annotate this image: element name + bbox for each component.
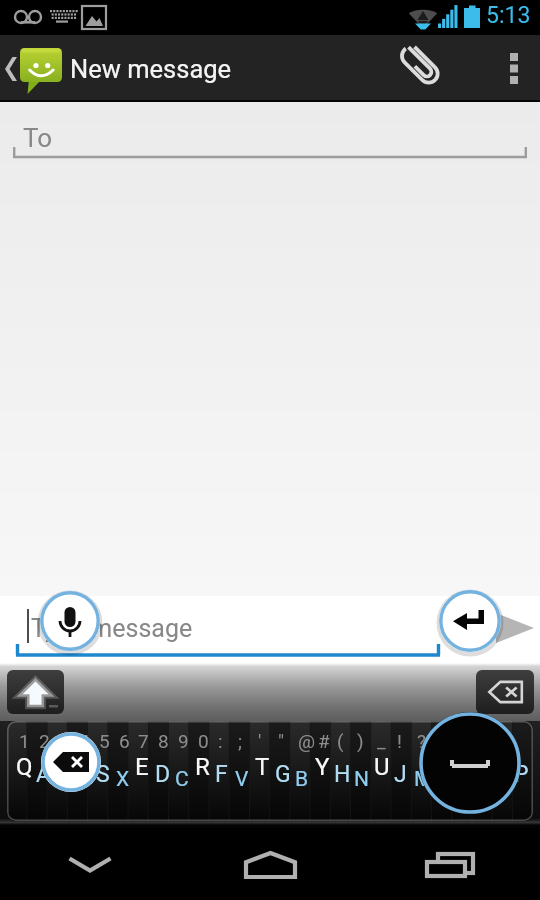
staticText: ( — [337, 730, 344, 752]
staticText: 1 — [19, 730, 30, 752]
staticText: H — [334, 761, 351, 788]
button[interactable]: Type message — [0, 596, 540, 663]
staticText: 5 — [99, 730, 110, 752]
staticText: ; — [238, 730, 243, 752]
staticText: M — [414, 767, 433, 792]
button[interactable]: Navigate up — [0, 36, 232, 101]
button[interactable]: To — [0, 102, 540, 160]
staticText: C — [175, 767, 189, 792]
staticText: 2 — [39, 730, 50, 752]
staticText: V — [235, 767, 249, 792]
button[interactable]: Attach — [390, 35, 456, 100]
button[interactable]: Hide keyboard — [0, 830, 180, 900]
staticText: 5:13 — [486, 2, 531, 29]
staticText: 6 — [119, 730, 130, 752]
staticText: ) — [357, 730, 364, 752]
staticText: G — [275, 761, 291, 788]
staticText: F — [215, 761, 228, 788]
staticText: ' — [258, 730, 262, 752]
staticText: Q — [16, 753, 33, 781]
button[interactable]: More options — [488, 36, 540, 101]
staticText: P — [514, 761, 529, 788]
staticText: _ — [377, 730, 386, 752]
staticText: 4 — [79, 730, 90, 752]
staticText: 0 — [198, 730, 209, 752]
staticText: " — [278, 730, 285, 752]
staticText: R — [195, 753, 210, 781]
staticText: @ — [298, 730, 316, 752]
staticText: # — [318, 730, 330, 752]
staticText: 7 — [138, 730, 149, 752]
staticText: N — [354, 767, 369, 792]
staticText: 3 — [59, 730, 70, 752]
staticText: W — [76, 753, 98, 781]
button[interactable]: Shift — [7, 670, 64, 714]
staticText: U — [374, 753, 390, 781]
staticText: Y — [315, 753, 330, 781]
staticText: A — [36, 761, 52, 788]
staticText: E — [135, 753, 149, 781]
button[interactable]: Keyboard keys — [7, 721, 533, 821]
staticText: Z — [56, 767, 69, 792]
staticText: New message — [70, 54, 232, 84]
staticText: K — [454, 761, 469, 788]
staticText: ! — [397, 730, 402, 752]
button[interactable]: Delete — [476, 670, 534, 714]
staticText: : — [218, 730, 223, 752]
staticText: 8 — [158, 730, 169, 752]
staticText: J — [394, 761, 407, 788]
button[interactable]: Recent apps — [360, 830, 540, 900]
staticText: To — [23, 123, 53, 153]
staticText: 9 — [178, 730, 189, 752]
staticText: T — [255, 753, 270, 781]
other: Navigate up — [5, 57, 17, 81]
staticText: Type message — [31, 614, 193, 643]
staticText: L — [474, 767, 486, 792]
button[interactable]: Home — [180, 830, 360, 900]
staticText: S — [96, 761, 110, 788]
staticText: D — [155, 761, 171, 788]
staticText: ? — [417, 730, 426, 752]
staticText: X — [116, 767, 130, 792]
staticText: B — [295, 767, 309, 792]
